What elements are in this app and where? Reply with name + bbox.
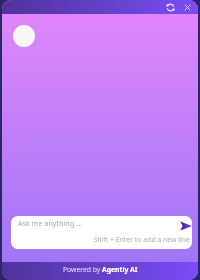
button[interactable]: Refresh conversation [164, 1, 177, 14]
staticText: Shift + Enter to add a new line [93, 235, 190, 244]
button[interactable]: Powered by [2, 262, 198, 280]
button[interactable]: Assistant avatar [13, 25, 35, 47]
button[interactable]: Ask me anything ... [11, 216, 192, 249]
staticText: Powered by [63, 265, 102, 274]
staticText: Agently AI [102, 265, 138, 274]
staticText: Ask me anything ... [18, 219, 83, 229]
button[interactable]: Close [181, 1, 194, 14]
button[interactable]: Send message [180, 221, 192, 231]
